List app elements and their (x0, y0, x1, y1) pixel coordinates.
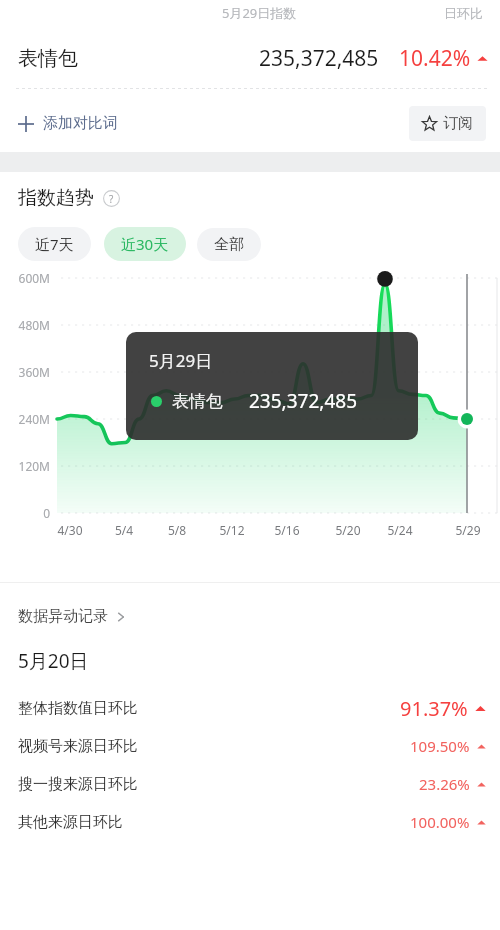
button[interactable]: 其他来源日环比 (0, 803, 500, 841)
staticText: 240M (0, 411, 50, 427)
staticText: 109.50% (410, 736, 470, 756)
button[interactable]: 订阅 (409, 106, 486, 141)
staticText: 600M (0, 270, 50, 286)
staticText: 5月29日指数 (222, 4, 297, 22)
staticText: 近7天 (35, 234, 74, 254)
staticText: 5月20日 (18, 648, 89, 674)
staticText: 235,372,485 (259, 44, 379, 73)
staticText: 5/16 (262, 522, 312, 538)
staticText: 360M (0, 364, 50, 380)
staticText: 表情包 (18, 46, 78, 71)
button[interactable]: 添加对比词 (0, 108, 128, 139)
staticText: 120M (0, 458, 50, 474)
button[interactable]: 近7天 (18, 227, 91, 261)
staticText: 指数趋势 (18, 186, 94, 210)
staticText: 4/30 (45, 522, 95, 538)
staticText: 5/4 (99, 522, 149, 538)
staticText: 0 (0, 505, 50, 521)
staticText: 5/29 (443, 522, 493, 538)
staticText: 添加对比词 (43, 114, 118, 133)
staticText: 5/8 (152, 522, 202, 538)
button[interactable]: 整体指数值日环比 (0, 689, 500, 727)
staticText: 5月29日 (149, 349, 213, 372)
staticText: 整体指数值日环比 (18, 699, 138, 718)
button[interactable]: 视频号来源日环比 (0, 727, 500, 765)
button[interactable]: 近30天 (104, 227, 186, 261)
staticText: 搜一搜来源日环比 (18, 775, 138, 794)
button[interactable]: 搜一搜来源日环比 (0, 765, 500, 803)
button[interactable]: Help (103, 190, 120, 207)
button[interactable]: 全部 (197, 228, 261, 261)
staticText: 5/24 (375, 522, 425, 538)
staticText: ? (109, 192, 114, 206)
staticText: 10.42% (399, 44, 471, 73)
staticText: 订阅 (443, 114, 473, 133)
staticText: 全部 (214, 235, 244, 254)
staticText: 数据异动记录 (18, 607, 108, 626)
staticText: 5/20 (323, 522, 373, 538)
button[interactable]: 数据异动记录 (0, 603, 145, 630)
staticText: 日环比 (444, 5, 483, 21)
staticText: 表情包 (172, 391, 223, 412)
staticText: 23.26% (419, 774, 470, 794)
staticText: 近30天 (121, 234, 169, 254)
staticText: 视频号来源日环比 (18, 737, 138, 756)
staticText: 480M (0, 317, 50, 333)
staticText: 其他来源日环比 (18, 813, 123, 832)
staticText: 235,372,485 (249, 388, 357, 414)
staticText: 91.37% (400, 695, 468, 722)
staticText: 100.00% (410, 812, 470, 832)
staticText: 5/12 (207, 522, 257, 538)
